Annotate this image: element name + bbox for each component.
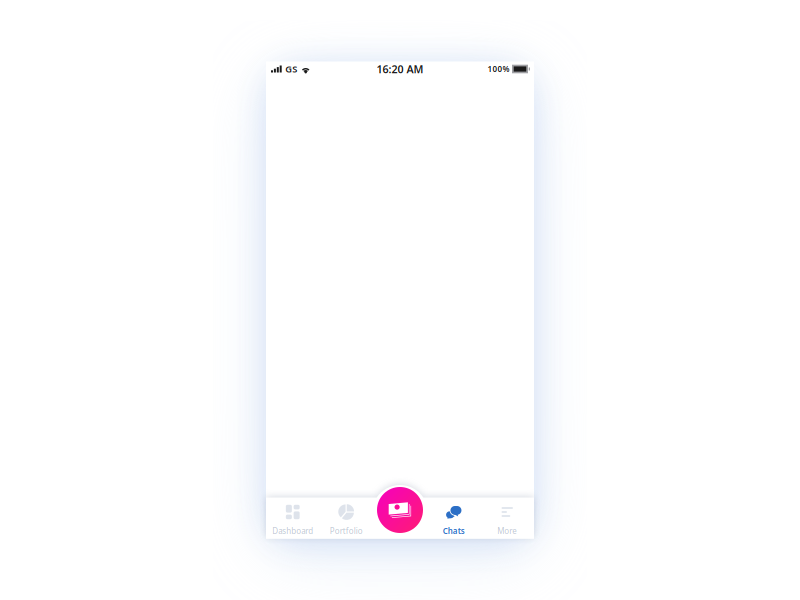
staticText: Portfolio: [330, 525, 363, 536]
button[interactable]: Dashboard: [266, 498, 319, 538]
button[interactable]: Portfolio: [319, 498, 373, 538]
staticText: GS: [285, 63, 297, 75]
staticText: 100%: [487, 64, 509, 74]
staticText: Chats: [443, 525, 465, 536]
button[interactable]: Chats: [427, 498, 480, 538]
staticText: 16:20 AM: [376, 62, 423, 76]
button[interactable]: More: [480, 498, 534, 538]
staticText: More: [497, 525, 517, 536]
button[interactable]: New payment: [377, 487, 423, 533]
staticText: Dashboard: [272, 525, 313, 536]
